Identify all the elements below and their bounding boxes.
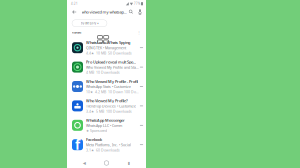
staticText: 4.4★ 10 MB 50 Downloads <box>86 51 132 55</box>
button[interactable]: Back <box>79 158 89 168</box>
staticText: QINGTEK • Management <box>86 46 126 50</box>
button[interactable]: Who Viewed My Profile? <box>67 96 146 116</box>
staticText: Who Viewed My Profile? <box>86 98 128 103</box>
staticText: ▾ <box>97 22 98 25</box>
staticText: Facebook <box>86 137 102 142</box>
staticText: WhatsApp Messenger <box>86 117 125 123</box>
staticText: By category <box>81 21 96 25</box>
staticText: who viewed my whatsap… <box>81 9 126 15</box>
staticText: 10★ 4.2 MB 10 Down 100 Down <box>86 89 138 94</box>
staticText: Reviews <box>72 31 81 34</box>
staticText: ★ Sponsored <box>86 128 107 133</box>
staticText: 3.4★ 5 MB 100 Downloads <box>86 109 132 114</box>
staticText: ⋮ <box>137 30 141 35</box>
button[interactable]: WhatsApp Messenger <box>67 116 146 135</box>
staticText: Who Viewed My Profile - Profil <box>86 79 138 84</box>
button[interactable]: Recent apps <box>124 158 134 168</box>
button[interactable]: Home <box>101 158 111 168</box>
button[interactable]: Search <box>126 7 135 16</box>
staticText: WhatsApp Stats • Customize <box>86 84 131 89</box>
staticText: 3.1★ 60 Downloads <box>86 148 120 152</box>
button[interactable]: By category <box>72 20 107 27</box>
staticText: Who Viewed My Profile and Status <box>86 65 138 70</box>
staticText: Pro Upload reveal mult Spo… <box>86 59 136 65</box>
button[interactable]: WhatsLock: Whats Spying <box>67 38 146 57</box>
button[interactable]: Back <box>70 7 79 16</box>
staticText: TrendTop Devices • Customize <box>86 104 136 108</box>
staticText: WhatsApp LLC • Comm <box>86 123 122 128</box>
staticText: Meta Platforms, Inc. • Social <box>86 143 131 147</box>
staticText: ▮ <box>128 161 130 165</box>
staticText: f <box>75 136 80 153</box>
button[interactable]: f <box>67 135 146 154</box>
button[interactable]: Who Viewed My Profile - Profil <box>67 77 146 96</box>
button[interactable]: Voice search <box>135 7 144 16</box>
button[interactable]: Pro Upload reveal mult Spo… <box>67 57 146 77</box>
staticText: 77% <box>134 2 140 5</box>
staticText: WhatsLock: Whats Spying <box>86 40 130 45</box>
staticText: 4 MB 10 Downloads <box>86 70 120 75</box>
staticText: 4:21 <box>71 2 78 5</box>
staticText: ◀ <box>83 161 86 165</box>
